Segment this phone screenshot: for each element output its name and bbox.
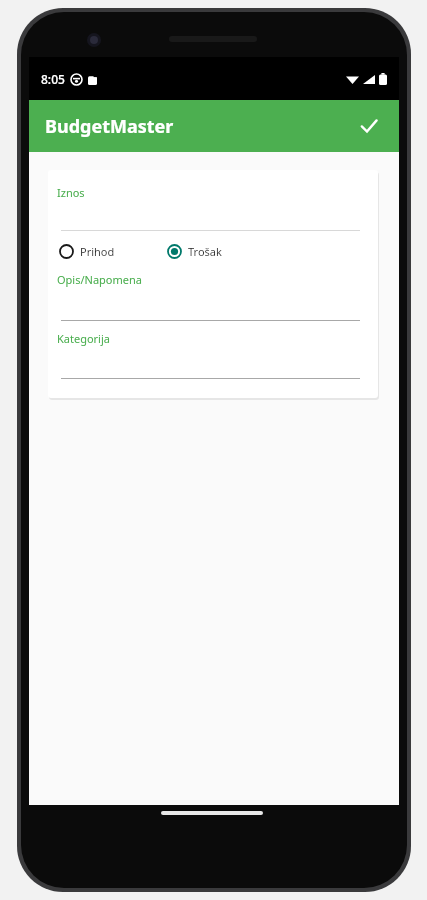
button[interactable]: Save bbox=[349, 106, 389, 146]
staticText: Trošak bbox=[188, 244, 222, 259]
button[interactable]: Trošak bbox=[167, 244, 226, 259]
staticText: Prihod bbox=[80, 244, 115, 259]
staticText: Kategorija bbox=[57, 331, 110, 346]
staticText: Iznos bbox=[57, 185, 85, 200]
button[interactable]: Amount input bbox=[61, 200, 361, 232]
button[interactable]: Prihod bbox=[59, 244, 119, 259]
staticText: Opis/Napomena bbox=[57, 272, 142, 287]
staticText: BudgetMaster bbox=[45, 114, 174, 139]
staticText: 8:05 bbox=[41, 71, 65, 87]
